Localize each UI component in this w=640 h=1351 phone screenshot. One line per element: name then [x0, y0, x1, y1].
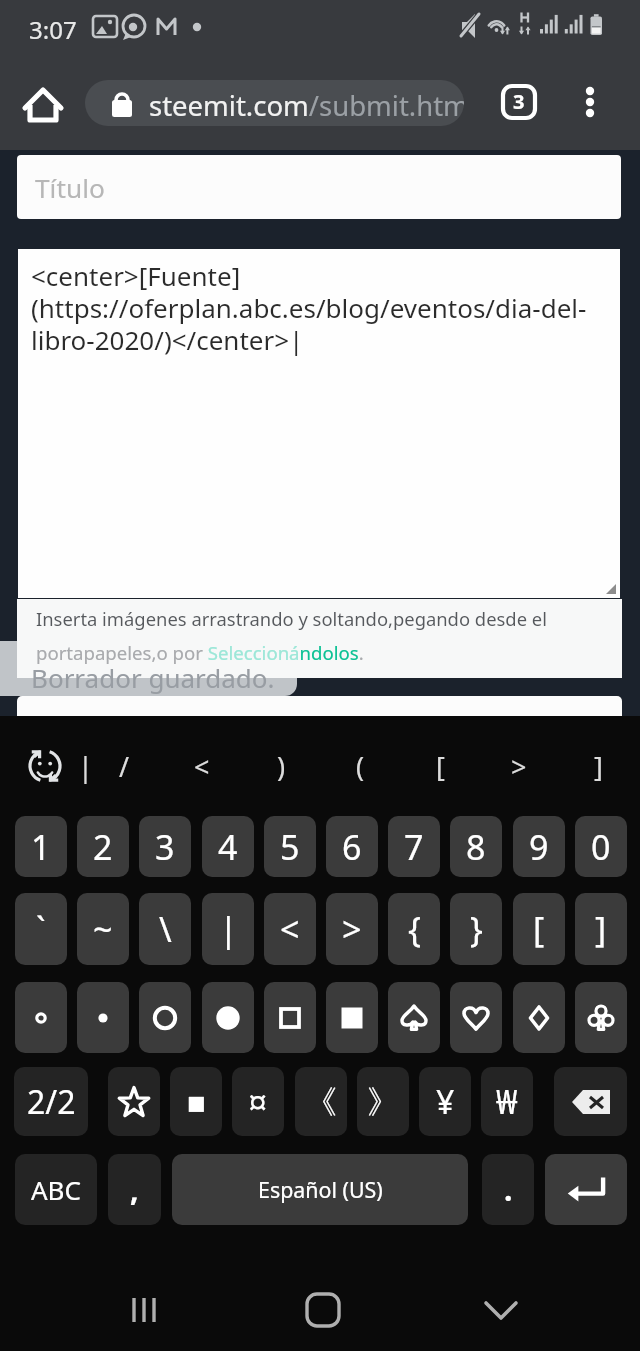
staticText: 8	[466, 824, 486, 870]
button[interactable]: ~	[77, 893, 129, 965]
button[interactable]: spade	[388, 982, 440, 1053]
button[interactable]: >	[326, 893, 378, 965]
button[interactable]: \	[139, 893, 191, 965]
button[interactable]: 4	[202, 816, 254, 877]
button[interactable]: diamond	[513, 982, 565, 1053]
button[interactable]: filled square	[326, 982, 378, 1053]
button[interactable]: 9	[513, 816, 565, 877]
button[interactable]: ABC	[15, 1154, 97, 1225]
button[interactable]: More options	[568, 78, 612, 122]
button[interactable]: Hide keyboard	[458, 1270, 544, 1350]
button[interactable]: filled circle	[202, 982, 254, 1053]
staticText: `	[36, 906, 46, 952]
button[interactable]: 2/2	[14, 1067, 88, 1136]
staticText: .	[504, 1169, 513, 1210]
button[interactable]: steemit.com/submit.html	[85, 80, 464, 126]
button[interactable]: }	[450, 893, 502, 965]
staticText: ABC	[31, 1172, 81, 1207]
button[interactable]: ]	[575, 893, 627, 965]
staticText: 3	[513, 88, 525, 115]
button[interactable]: Título	[17, 155, 621, 219]
button[interactable]: Recents	[100, 1270, 190, 1350]
staticText: [	[533, 906, 545, 952]
button[interactable]: ]	[568, 740, 628, 792]
staticText: <	[194, 748, 210, 785]
button[interactable]: 5	[264, 816, 316, 877]
staticText: }	[470, 906, 483, 952]
button[interactable]: 3	[139, 816, 191, 877]
button[interactable]: yen	[419, 1067, 471, 1136]
staticText: ]	[595, 906, 607, 952]
staticText: 3	[155, 824, 175, 870]
button[interactable]: [	[410, 740, 470, 792]
button[interactable]: [	[513, 893, 565, 965]
button[interactable]: heart	[450, 982, 502, 1053]
button[interactable]: star	[108, 1067, 160, 1136]
staticText: )	[277, 748, 286, 785]
button[interactable]: (	[330, 740, 390, 792]
button[interactable]: won	[481, 1067, 533, 1136]
button[interactable]: 6	[326, 816, 378, 877]
button[interactable]: <	[264, 893, 316, 965]
staticText: ▪	[186, 1084, 207, 1119]
button[interactable]: 1	[15, 816, 67, 877]
button[interactable]: club	[575, 982, 627, 1053]
button[interactable]: /	[94, 740, 154, 792]
button[interactable]: )	[251, 740, 311, 792]
staticText: {	[408, 906, 421, 952]
button[interactable]: Español (US)	[172, 1154, 468, 1225]
staticText: 9	[529, 824, 549, 870]
button[interactable]: bullet	[77, 982, 129, 1053]
button[interactable]: .	[482, 1154, 534, 1225]
staticText: Inserta imágenes arrastrando y soltando,…	[36, 606, 547, 631]
button[interactable]: circle outline	[139, 982, 191, 1053]
staticText: steemit.com/submit.html	[149, 87, 464, 124]
button[interactable]: <	[172, 740, 232, 792]
button[interactable]: currency	[232, 1067, 284, 1136]
staticText: 7	[404, 824, 424, 870]
button[interactable]: Emoji	[16, 740, 74, 792]
staticText: ₩	[496, 1080, 518, 1124]
button[interactable]: 2	[77, 816, 129, 877]
staticText: >	[342, 906, 362, 952]
button[interactable]: |	[55, 740, 115, 792]
staticText: ]	[594, 748, 603, 785]
staticText: [	[436, 748, 445, 785]
button[interactable]: {	[388, 893, 440, 965]
staticText: 》	[367, 1082, 399, 1122]
staticText: Borrador guardado.	[31, 660, 275, 695]
staticText: 1	[31, 824, 51, 870]
button[interactable]: small square	[170, 1067, 222, 1136]
button[interactable]: Home	[280, 1270, 366, 1350]
button[interactable]: ,	[108, 1154, 161, 1225]
button[interactable]: 7	[388, 816, 440, 877]
button[interactable]: `	[15, 893, 67, 965]
staticText: 6	[342, 824, 362, 870]
staticText: Español (US)	[258, 1175, 383, 1204]
staticText: 5	[280, 824, 300, 870]
staticText: 2/2	[27, 1080, 76, 1124]
button[interactable]: 0	[575, 816, 627, 877]
button[interactable]: Backspace	[554, 1067, 627, 1136]
button[interactable]: Enter	[545, 1154, 627, 1225]
button[interactable]: Tabs	[495, 78, 543, 126]
staticText: 《	[305, 1082, 337, 1122]
staticText: /	[119, 748, 130, 785]
staticText: ~	[93, 906, 113, 952]
staticText: <center>[Fuente] (https://oferplan.abc.e…	[31, 258, 587, 358]
button[interactable]: Home	[14, 76, 72, 130]
button[interactable]: double angle left	[295, 1067, 347, 1136]
staticText: 3:07	[29, 13, 77, 46]
button[interactable]: 8	[450, 816, 502, 877]
staticText: <	[280, 906, 300, 952]
staticText: |	[219, 906, 238, 952]
button[interactable]: |	[202, 893, 254, 965]
button[interactable]: <center>[Fuente] (https://oferplan.abc.e…	[18, 249, 620, 598]
staticText: ¥	[436, 1080, 455, 1124]
staticText: \	[159, 906, 172, 952]
staticText: (	[356, 748, 365, 785]
button[interactable]: square outline	[264, 982, 316, 1053]
button[interactable]: degree	[15, 982, 67, 1053]
button[interactable]: >	[489, 740, 549, 792]
button[interactable]: double angle right	[357, 1067, 409, 1136]
